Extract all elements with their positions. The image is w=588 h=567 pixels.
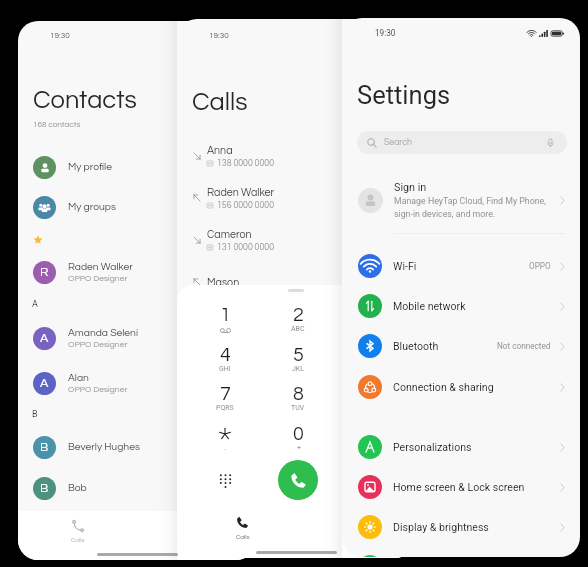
staticText: 138 0000 0000: [217, 159, 274, 168]
button[interactable]: My profile: [18, 150, 256, 184]
button[interactable]: Search: [357, 131, 567, 154]
button[interactable]: Mobile network: [342, 288, 580, 324]
staticText: Manage HeyTap Cloud, Find My Phone, sign…: [394, 196, 546, 219]
button[interactable]: [351, 424, 391, 458]
button[interactable]: Home screen & Lock screen: [342, 469, 580, 505]
staticText: Search: [384, 138, 412, 147]
button[interactable]: R: [18, 255, 256, 289]
staticText: 2: [293, 305, 304, 325]
button[interactable]: Bluetooth: [342, 328, 580, 364]
staticText: TUV: [291, 404, 305, 412]
staticText: Raden Walker: [207, 187, 275, 198]
staticText: My groups: [68, 202, 116, 213]
staticText: Bob: [68, 483, 87, 494]
button[interactable]: Contacts: [137, 519, 256, 549]
button[interactable]: Raden Walker: [177, 181, 415, 215]
staticText: Anna: [207, 145, 233, 156]
staticText: Contacts: [33, 87, 137, 113]
button[interactable]: Calls: [183, 516, 302, 544]
staticText: R: [40, 266, 49, 279]
staticText: 5: [293, 345, 304, 365]
staticText: Not connected: [497, 341, 551, 351]
staticText: 19:30: [375, 28, 396, 38]
button[interactable]: 8: [278, 384, 318, 418]
button[interactable]: 1: [205, 305, 245, 339]
button[interactable]: Call: [278, 460, 318, 500]
staticText: OPPO: [529, 261, 551, 271]
staticText: .: [224, 444, 226, 452]
staticText: ABC: [291, 325, 305, 333]
staticText: Connection & sharing: [393, 381, 494, 393]
staticText: A: [32, 299, 38, 310]
button[interactable]: My groups: [18, 190, 256, 224]
button[interactable]: A: [18, 321, 256, 355]
staticText: Calls: [192, 89, 248, 115]
button[interactable]: 9: [351, 384, 391, 418]
button[interactable]: 6: [351, 345, 391, 379]
button[interactable]: A: [18, 366, 256, 400]
button[interactable]: Connection & sharing: [342, 369, 580, 405]
staticText: B: [40, 441, 49, 454]
button[interactable]: 5: [278, 345, 318, 379]
button[interactable]: Mason: [177, 265, 415, 299]
staticText: Calls: [71, 537, 85, 543]
staticText: A: [40, 377, 49, 390]
staticText: 9: [366, 384, 377, 404]
button[interactable]: 0: [278, 424, 318, 458]
staticText: Settings: [357, 80, 451, 110]
staticText: 8: [293, 384, 304, 404]
staticText: My profile: [68, 162, 112, 173]
staticText: GHI: [219, 365, 231, 373]
staticText: OPPO Designer: [68, 340, 128, 349]
button[interactable]: Contacts: [302, 516, 415, 544]
staticText: Wi-Fi: [393, 260, 417, 272]
staticText: Personalizations: [393, 441, 472, 453]
staticText: Cameron: [207, 229, 252, 240]
staticText: 0: [293, 424, 304, 444]
staticText: Mason: [207, 277, 240, 288]
button[interactable]: Sign in: [342, 177, 580, 223]
button[interactable]: B: [18, 430, 256, 464]
staticText: Sign in: [394, 181, 427, 194]
staticText: 131 0000 0000: [217, 243, 274, 252]
staticText: Home screen & Lock screen: [393, 481, 525, 493]
button[interactable]: 2: [278, 305, 318, 339]
button[interactable]: .: [205, 424, 245, 458]
staticText: Mobile network: [393, 300, 466, 312]
button[interactable]: 7: [205, 384, 245, 418]
staticText: 3: [366, 305, 377, 325]
staticText: Raden Walker: [68, 262, 133, 273]
staticText: 168 contacts: [33, 120, 81, 128]
button[interactable]: 3: [351, 305, 391, 339]
button[interactable]: 4: [205, 345, 245, 379]
button[interactable]: Calls: [18, 519, 137, 549]
staticText: 1: [220, 305, 231, 325]
staticText: A: [40, 332, 49, 345]
button[interactable]: [342, 549, 580, 557]
staticText: Display & brightness: [393, 521, 489, 533]
button[interactable]: Keypad: [212, 467, 238, 493]
button[interactable]: Anna: [177, 139, 415, 173]
button[interactable]: B: [18, 471, 256, 505]
staticText: 19:30: [50, 31, 70, 39]
staticText: PQRS: [216, 404, 234, 412]
staticText: 6: [366, 345, 377, 365]
staticText: Contacts: [349, 534, 375, 540]
staticText: OPPO Designer: [68, 385, 128, 394]
staticText: 156 0000 0000: [217, 201, 274, 210]
staticText: B: [32, 409, 38, 420]
button[interactable]: Cameron: [177, 223, 415, 257]
staticText: OPPO Designer: [68, 274, 128, 283]
staticText: Beverly Hughes: [68, 442, 140, 453]
staticText: Amanda Seleni: [68, 328, 139, 339]
staticText: 19:30: [209, 31, 229, 39]
button[interactable]: Wi-Fi: [342, 248, 580, 284]
staticText: 4: [220, 345, 231, 365]
button[interactable]: Display & brightness: [342, 509, 580, 545]
button[interactable]: Personalizations: [342, 429, 580, 465]
staticText: Calls: [236, 534, 250, 540]
